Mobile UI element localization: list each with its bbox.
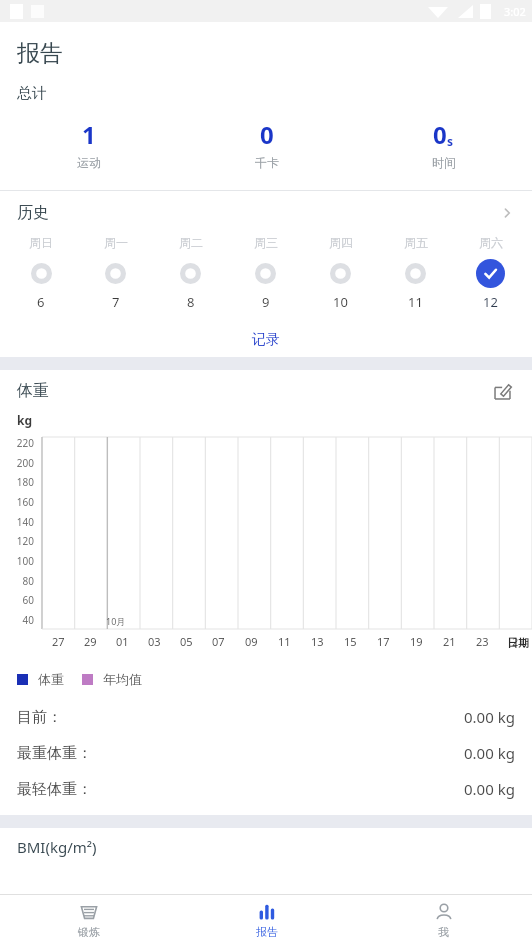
button[interactable]: 历史 (0, 191, 532, 235)
staticText: 周六 (479, 235, 503, 250)
staticText: 13 (311, 634, 324, 649)
button[interactable]: 周一 (78, 235, 153, 311)
staticText: 220 (16, 436, 34, 450)
staticText: 03 (148, 634, 161, 649)
staticText: 目前： (17, 708, 464, 727)
staticText: 0 (433, 118, 447, 151)
staticText: 体重 (17, 381, 489, 401)
staticText: 27 (52, 634, 65, 649)
staticText: 1 (82, 118, 96, 151)
staticText: 40 (22, 613, 34, 627)
staticText: 07 (212, 634, 225, 649)
staticText: 160 (16, 495, 34, 509)
staticText: 120 (16, 534, 34, 548)
staticText: 时间 (432, 155, 456, 170)
staticText: 9 (262, 293, 270, 311)
staticText: 日期 (507, 636, 529, 650)
staticText: 周三 (254, 235, 278, 250)
staticText: 19 (410, 634, 423, 649)
button[interactable]: 周六 (453, 235, 528, 311)
staticText: 千卡 (255, 155, 279, 170)
staticText: 60 (22, 593, 34, 607)
staticText: 8 (187, 293, 195, 311)
staticText: 29 (84, 634, 97, 649)
staticText: 7 (112, 293, 120, 311)
button[interactable]: 我 (355, 895, 532, 946)
staticText: 0.00 kg (464, 779, 515, 799)
button[interactable]: 周三 (228, 235, 303, 311)
staticText: 运动 (77, 155, 101, 170)
staticText: 140 (16, 515, 34, 529)
button[interactable]: 锻炼 (0, 895, 178, 946)
staticText: 记录 (252, 331, 280, 349)
staticText: 05 (180, 634, 193, 649)
staticText: BMI(kg/m²) (17, 837, 97, 857)
staticText: 11 (408, 293, 423, 311)
staticText: 0.00 kg (464, 743, 515, 763)
staticText: 锻炼 (78, 925, 100, 939)
staticText: 体重 (38, 671, 64, 687)
staticText: 11 (278, 634, 291, 649)
button[interactable]: 周二 (153, 235, 228, 311)
staticText: 历史 (17, 203, 499, 223)
staticText: 我 (438, 925, 449, 939)
staticText: 0.00 kg (464, 707, 515, 727)
staticText: 报告 (256, 925, 278, 939)
button[interactable]: 周四 (303, 235, 378, 311)
staticText: 6 (37, 293, 45, 311)
staticText: 最重体重： (17, 744, 464, 763)
button[interactable]: 周日 (4, 235, 78, 311)
staticText: 周二 (179, 235, 203, 250)
staticText: 周五 (404, 235, 428, 250)
staticText: 01 (116, 634, 129, 649)
staticText: 80 (22, 574, 34, 588)
staticText: 0 (260, 118, 274, 151)
button[interactable]: 周五 (378, 235, 453, 311)
staticText: 17 (377, 634, 390, 649)
staticText: 最轻体重： (17, 780, 464, 799)
staticText: 年均值 (103, 671, 142, 687)
staticText: s (447, 133, 454, 149)
staticText: 180 (16, 475, 34, 489)
staticText: 100 (16, 554, 34, 568)
staticText: kg (17, 412, 33, 428)
staticText: 10月 (106, 615, 126, 627)
staticText: 周一 (104, 235, 128, 250)
staticText: 3:02 (504, 4, 526, 19)
staticText: 周日 (29, 235, 53, 250)
button[interactable]: 记录 (0, 323, 532, 357)
staticText: 2 (512, 634, 519, 649)
staticText: 200 (16, 456, 34, 470)
staticText: 周四 (329, 235, 353, 250)
staticText: 10 (333, 293, 348, 311)
staticText: 09 (245, 634, 258, 649)
staticText: 报告 (17, 39, 63, 68)
staticText: 总计 (17, 84, 47, 103)
staticText: 12 (483, 293, 498, 311)
button[interactable]: 报告 (178, 895, 355, 946)
staticText: 23 (476, 634, 489, 649)
staticText: 21 (443, 634, 456, 649)
staticText: 15 (344, 634, 357, 649)
button[interactable]: Edit weight (489, 378, 515, 404)
